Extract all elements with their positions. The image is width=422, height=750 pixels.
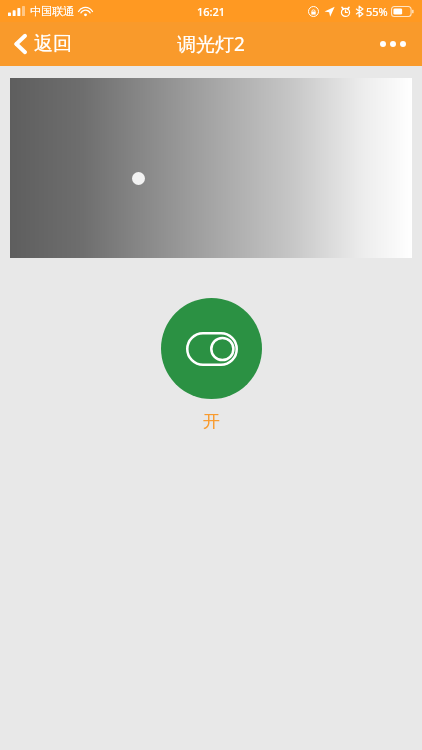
button[interactable]: Power toggle, on bbox=[161, 298, 262, 399]
staticText: 中国联通 bbox=[30, 4, 74, 18]
staticText: 55% bbox=[366, 4, 388, 19]
button[interactable]: More options bbox=[364, 29, 422, 59]
staticText: 返回 bbox=[34, 32, 72, 56]
staticText: 调光灯2 bbox=[177, 31, 245, 57]
staticText: 开 bbox=[203, 411, 220, 432]
button[interactable]: Brightness slider bbox=[10, 78, 412, 258]
button[interactable]: 返回 bbox=[0, 26, 84, 62]
staticText: 16:21 bbox=[197, 4, 226, 19]
